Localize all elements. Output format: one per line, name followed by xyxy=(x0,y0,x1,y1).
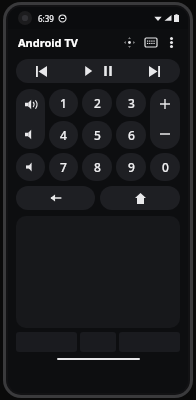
staticText: 7 xyxy=(60,159,67,175)
staticText: 6:39 xyxy=(38,13,54,24)
button[interactable]: 9 xyxy=(116,153,146,181)
staticText: 6 xyxy=(128,127,135,143)
button[interactable]: Skip previous xyxy=(16,59,67,83)
button[interactable]: Volume up xyxy=(16,89,45,119)
button[interactable]: Mute xyxy=(16,153,45,181)
button[interactable]: Pause xyxy=(98,59,118,83)
staticText: 3 xyxy=(128,95,135,111)
button[interactable]: 2 xyxy=(82,89,112,117)
staticText: 2 xyxy=(94,95,101,111)
button[interactable]: 8 xyxy=(82,153,112,181)
staticText: 1 xyxy=(60,95,67,111)
button[interactable]: 6 xyxy=(116,121,146,149)
button[interactable]: Skip next xyxy=(129,59,180,83)
button[interactable]: More options xyxy=(162,33,180,51)
button[interactable]: Play xyxy=(78,59,98,83)
button[interactable]: 5 xyxy=(82,121,112,149)
button[interactable]: Volume down xyxy=(16,119,45,149)
button[interactable]: Back xyxy=(16,186,95,210)
button[interactable]: Channel up xyxy=(150,89,180,119)
button[interactable]: 4 xyxy=(49,121,78,149)
staticText: Android TV xyxy=(18,35,78,50)
staticText: 4 xyxy=(60,127,67,143)
staticText: 8 xyxy=(94,159,101,175)
staticText: 0 xyxy=(162,159,169,175)
staticText: 9 xyxy=(128,159,135,175)
button[interactable]: 7 xyxy=(49,153,78,181)
button[interactable]: 0 xyxy=(150,153,180,181)
button[interactable]: Home xyxy=(100,186,180,210)
button[interactable]: Channel down xyxy=(150,119,180,149)
staticText: 5 xyxy=(94,127,101,143)
button[interactable]: Keyboard xyxy=(140,31,162,53)
button[interactable]: 1 xyxy=(49,89,78,117)
button[interactable]: D-pad xyxy=(118,31,140,53)
button[interactable]: 3 xyxy=(116,89,146,117)
